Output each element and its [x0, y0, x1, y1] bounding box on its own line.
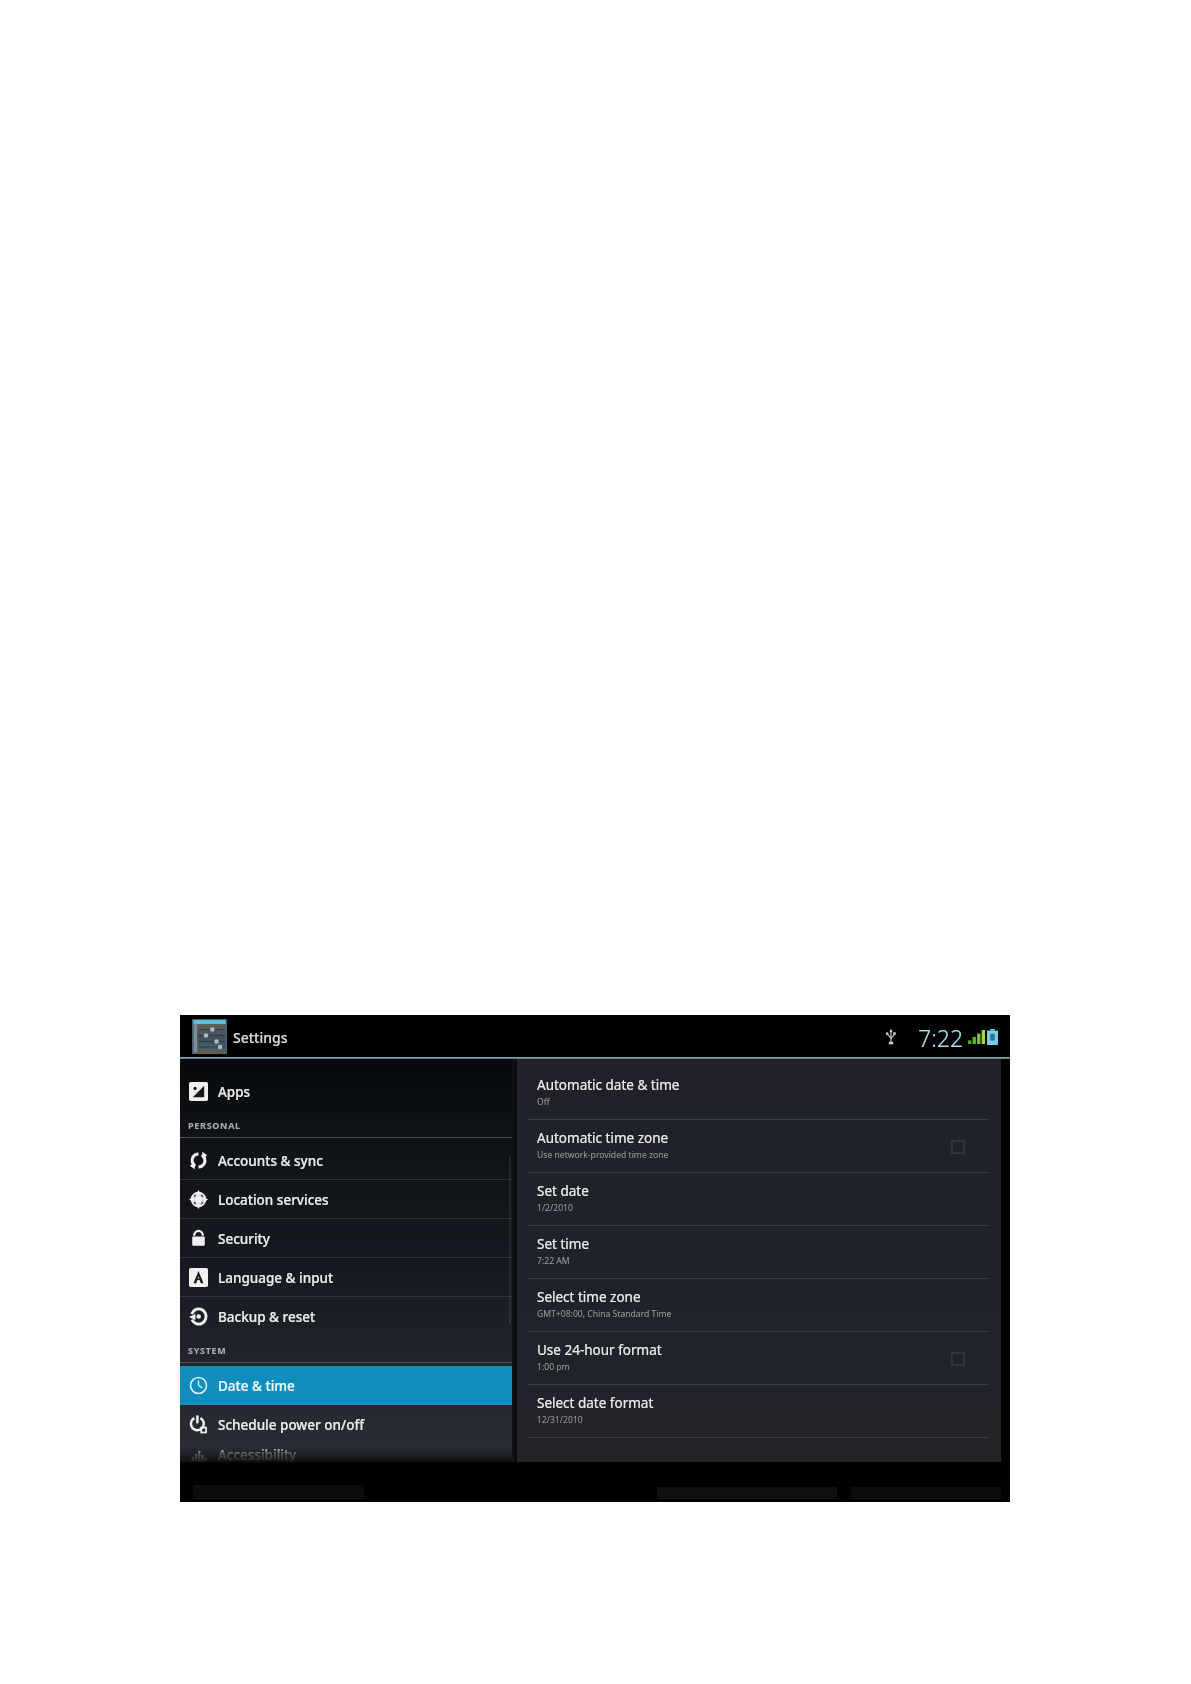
button[interactable]: Language & input: [180, 1258, 512, 1297]
staticText: Language & input: [218, 1269, 334, 1287]
button[interactable]: Signal strength: [968, 1030, 985, 1044]
button[interactable]: Select date format: [517, 1385, 1001, 1438]
staticText: Security: [218, 1230, 270, 1248]
staticText: Automatic time zone: [537, 1129, 669, 1147]
staticText: Select date format: [537, 1394, 654, 1412]
button[interactable]: Toggle checkbox: [947, 1348, 969, 1370]
staticText: Settings: [233, 1028, 288, 1047]
staticText: Schedule power on/off: [218, 1416, 365, 1434]
button[interactable]: Backup & reset: [180, 1297, 512, 1336]
button[interactable]: Accessibility: [180, 1444, 512, 1465]
staticText: 1/2/2010: [537, 1202, 573, 1214]
staticText: Use network-provided time zone: [537, 1149, 669, 1161]
staticText: Location services: [218, 1191, 329, 1209]
button[interactable]: Automatic time zone: [517, 1120, 1001, 1173]
staticText: 7:22 AM: [537, 1255, 570, 1267]
button[interactable]: Schedule power on/off: [180, 1405, 512, 1444]
button[interactable]: Automatic date & time: [517, 1067, 1001, 1120]
staticText: SYSTEM: [188, 1344, 227, 1356]
button[interactable]: Set time: [517, 1226, 1001, 1279]
button[interactable]: Set date: [517, 1173, 1001, 1226]
staticText: Date & time: [218, 1377, 295, 1395]
staticText: Set time: [537, 1235, 590, 1253]
button[interactable]: Toggle checkbox: [947, 1136, 969, 1158]
staticText: Use 24-hour format: [537, 1341, 662, 1359]
button[interactable]: Back, Home, Recents: [193, 1475, 364, 1499]
staticText: GMT+08:00, China Standard Time: [537, 1308, 672, 1320]
staticText: Apps: [218, 1083, 251, 1101]
button[interactable]: Select time zone: [517, 1279, 1001, 1332]
button[interactable]: Battery: [987, 1029, 998, 1045]
button[interactable]: Date & time: [180, 1366, 512, 1405]
staticText: Accessibility: [218, 1446, 297, 1464]
button[interactable]: Accounts & sync: [180, 1141, 512, 1180]
staticText: Automatic date & time: [537, 1076, 680, 1094]
staticText: PERSONAL: [188, 1119, 241, 1131]
button[interactable]: Security: [180, 1219, 512, 1258]
button[interactable]: USB connected: [886, 1029, 896, 1045]
button[interactable]: Use 24-hour format: [517, 1332, 1001, 1385]
button[interactable]: Quick settings: [851, 1477, 1001, 1499]
button[interactable]: Notifications: [657, 1477, 837, 1499]
button[interactable]: Settings: [192, 1019, 227, 1054]
button[interactable]: Apps: [180, 1072, 512, 1111]
button[interactable]: Location services: [180, 1180, 512, 1219]
staticText: 7:22: [918, 1022, 964, 1053]
staticText: 12/31/2010: [537, 1414, 583, 1426]
staticText: Backup & reset: [218, 1308, 316, 1326]
staticText: Off: [537, 1096, 550, 1108]
staticText: Select time zone: [537, 1288, 641, 1306]
staticText: Accounts & sync: [218, 1152, 323, 1170]
staticText: 1:00 pm: [537, 1361, 570, 1373]
staticText: Set date: [537, 1182, 589, 1200]
staticText: Storage: [211, 1070, 259, 1088]
